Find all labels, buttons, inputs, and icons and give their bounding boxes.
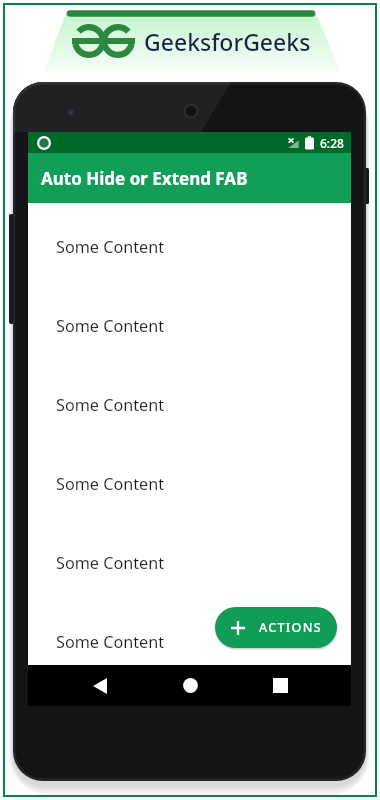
button[interactable]: Some Content (28, 444, 351, 523)
button[interactable]: Some Content (28, 286, 351, 365)
button[interactable]: Recents (258, 665, 302, 706)
staticText: Some Content (56, 315, 165, 337)
button[interactable]: Home (168, 665, 212, 706)
button[interactable]: Some Content (28, 365, 351, 444)
staticText: Some Content (56, 394, 165, 416)
staticText: Some Content (56, 631, 165, 653)
button[interactable]: Some Content (28, 602, 351, 665)
staticText: Some Content (56, 473, 165, 495)
staticText: ACTIONS (259, 619, 322, 636)
button[interactable]: Some Content (28, 523, 351, 602)
button[interactable]: Back (78, 665, 122, 706)
staticText: GeeksforGeeks (144, 26, 311, 57)
button[interactable]: Some Content (28, 207, 351, 286)
staticText: Auto Hide or Extend FAB (41, 167, 248, 190)
staticText: Some Content (56, 552, 165, 574)
staticText: Some Content (56, 236, 165, 258)
button[interactable]: Auto Hide or Extend FAB (28, 153, 351, 203)
button[interactable]: ACTIONS (215, 607, 337, 648)
staticText: 6:28 (320, 135, 344, 151)
